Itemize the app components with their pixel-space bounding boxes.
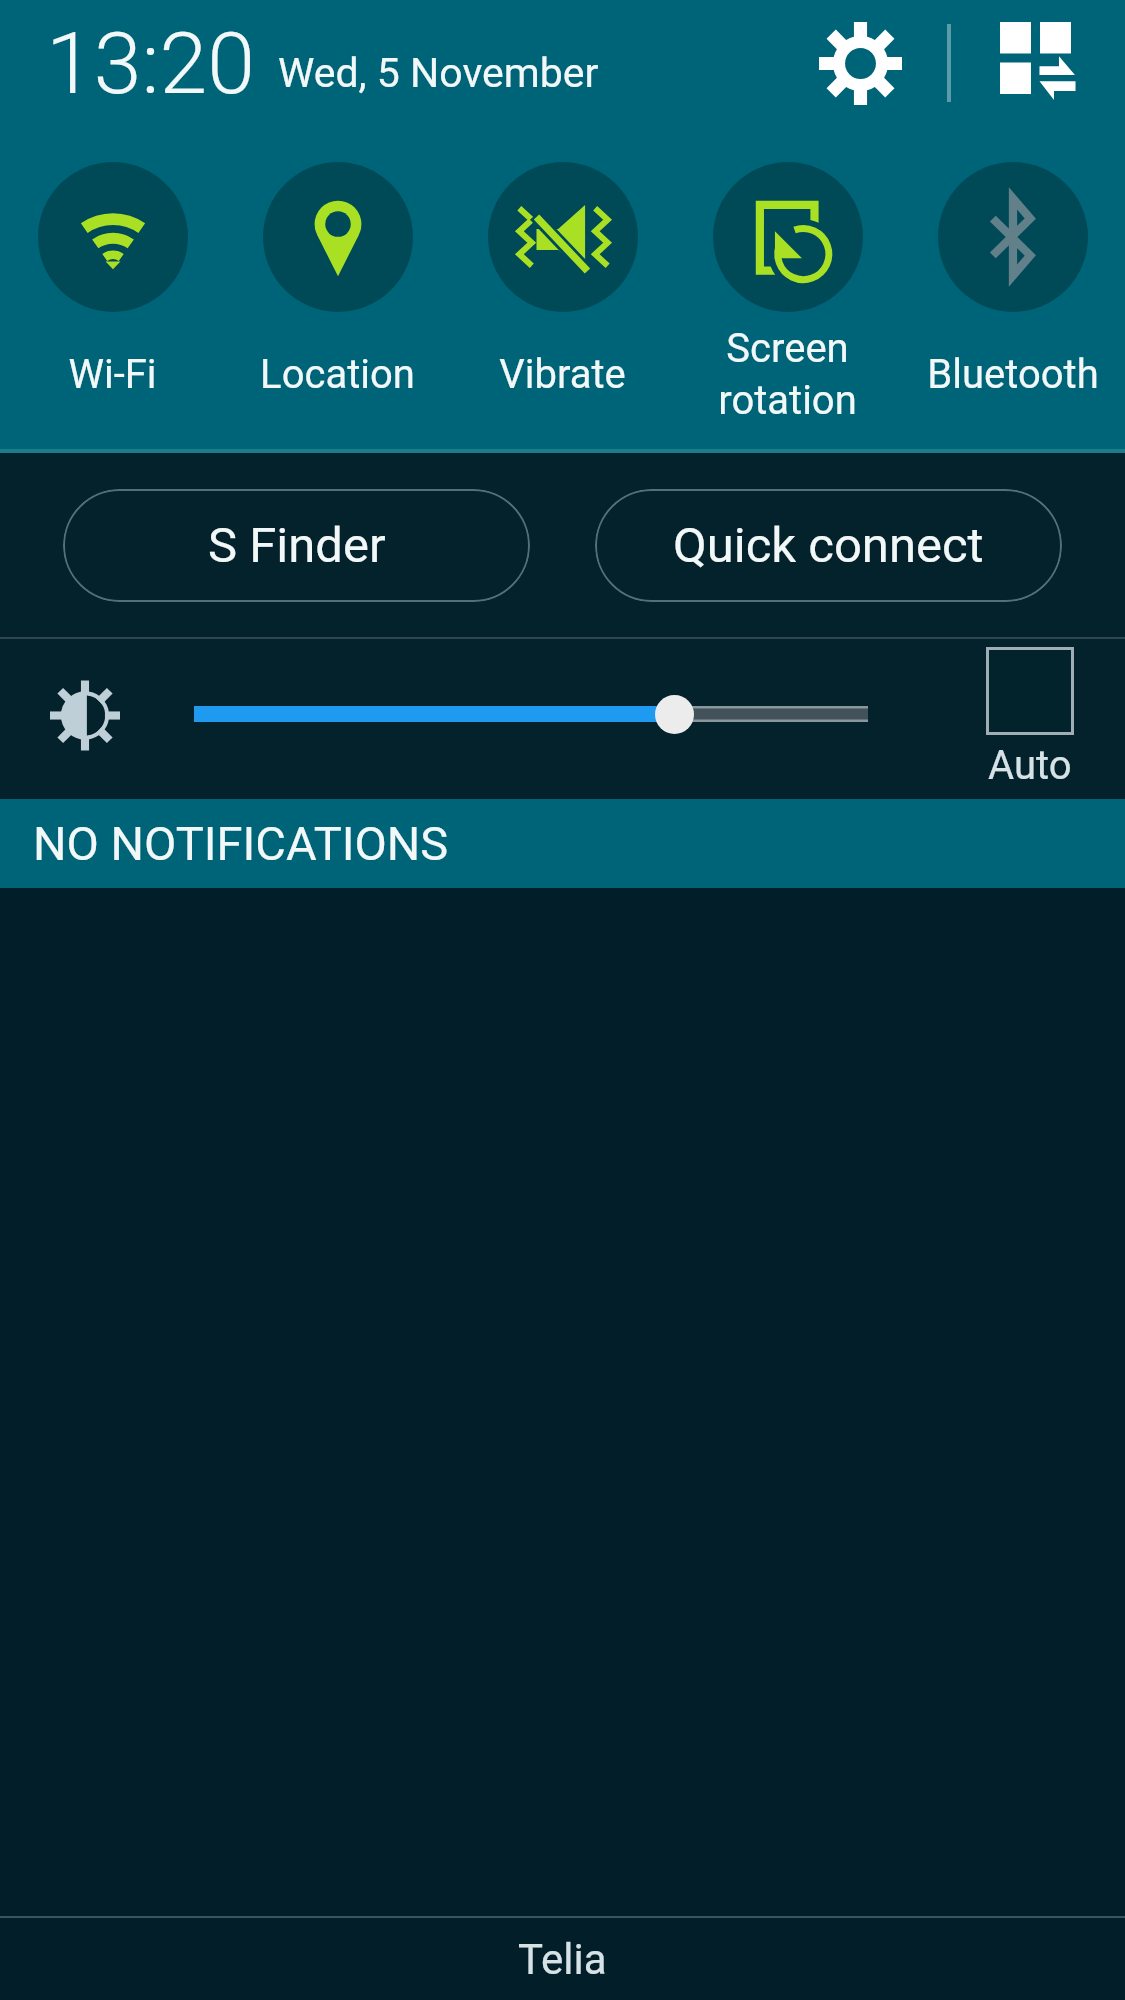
button[interactable]: Brightness bbox=[655, 695, 694, 734]
button[interactable]: Location bbox=[225, 162, 450, 436]
button[interactable]: Settings bbox=[804, 7, 916, 119]
button[interactable]: Wi-Fi bbox=[0, 162, 225, 436]
staticText: S Finder bbox=[208, 517, 386, 574]
button[interactable]: Quick connect bbox=[595, 489, 1062, 602]
staticText: NO NOTIFICATIONS bbox=[33, 816, 449, 871]
staticText: Quick connect bbox=[673, 517, 984, 574]
button[interactable]: S Finder bbox=[63, 489, 530, 602]
staticText: Location bbox=[260, 351, 415, 398]
staticText: 13:20 bbox=[46, 13, 255, 114]
button[interactable]: Auto bbox=[986, 647, 1074, 789]
staticText: Vibrate bbox=[499, 351, 626, 398]
staticText: Screen rotation bbox=[718, 325, 857, 424]
staticText: Auto bbox=[988, 742, 1072, 789]
button[interactable]: Vibrate bbox=[450, 162, 675, 436]
button[interactable]: Edit quick settings bbox=[982, 7, 1094, 119]
staticText: Wi-Fi bbox=[68, 351, 157, 398]
staticText: Telia bbox=[518, 1935, 607, 1984]
staticText: Wed, 5 November bbox=[278, 49, 599, 97]
button[interactable]: Screen rotation bbox=[675, 162, 900, 436]
staticText: Bluetooth bbox=[927, 351, 1099, 398]
button[interactable]: Bluetooth bbox=[900, 162, 1125, 436]
